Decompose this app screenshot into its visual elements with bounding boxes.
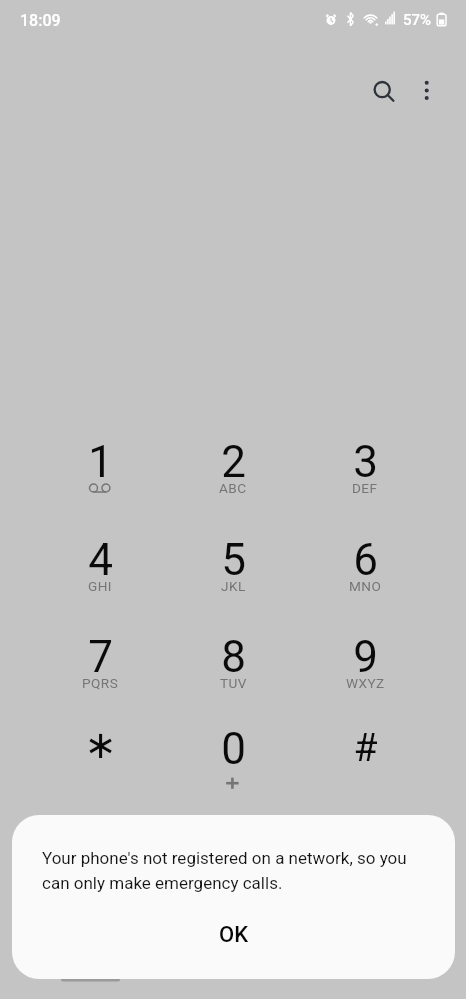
staticText: Your phone's not registered on a network… (42, 848, 435, 893)
staticText: DEF (352, 480, 378, 496)
button[interactable]: Search (359, 69, 407, 117)
staticText: 1 (88, 436, 113, 488)
staticText: TUV (220, 675, 247, 691)
button[interactable]: 5 (173, 521, 293, 611)
button[interactable]: 9 (305, 618, 425, 708)
button[interactable]: 8 (173, 618, 293, 708)
staticText: WXYZ (346, 675, 385, 691)
staticText: 4 (88, 534, 113, 586)
staticText: 0 (221, 723, 246, 775)
other: Voicemail (88, 480, 112, 496)
button[interactable]: 4 (40, 521, 160, 611)
staticText: 2 (221, 436, 246, 488)
button[interactable]: 0 (173, 710, 293, 800)
staticText: 57% (403, 11, 432, 29)
staticText: ∗ (84, 722, 117, 767)
staticText: JKL (221, 578, 246, 594)
button[interactable]: # (305, 710, 425, 800)
staticText: PQRS (82, 675, 119, 691)
staticText: 6 (353, 534, 378, 586)
staticText: 8 (221, 631, 246, 683)
staticText: MNO (349, 578, 382, 594)
staticText: GHI (88, 578, 113, 594)
staticText: 18:09 (20, 11, 61, 30)
button[interactable]: More options (402, 67, 450, 115)
staticText: ABC (219, 480, 247, 496)
button[interactable]: 1 (40, 423, 160, 513)
staticText: 5 (221, 534, 246, 586)
staticText: 7 (88, 631, 113, 683)
button[interactable]: 7 (40, 618, 160, 708)
staticText: 3 (353, 436, 378, 488)
staticText: OK (219, 922, 249, 948)
button[interactable]: 3 (305, 423, 425, 513)
button[interactable]: ∗ (40, 710, 160, 800)
staticText: # (353, 725, 378, 771)
button[interactable]: 6 (305, 521, 425, 611)
button[interactable]: OK (12, 911, 455, 959)
button[interactable]: 2 (173, 423, 293, 513)
staticText: 9 (353, 631, 378, 683)
